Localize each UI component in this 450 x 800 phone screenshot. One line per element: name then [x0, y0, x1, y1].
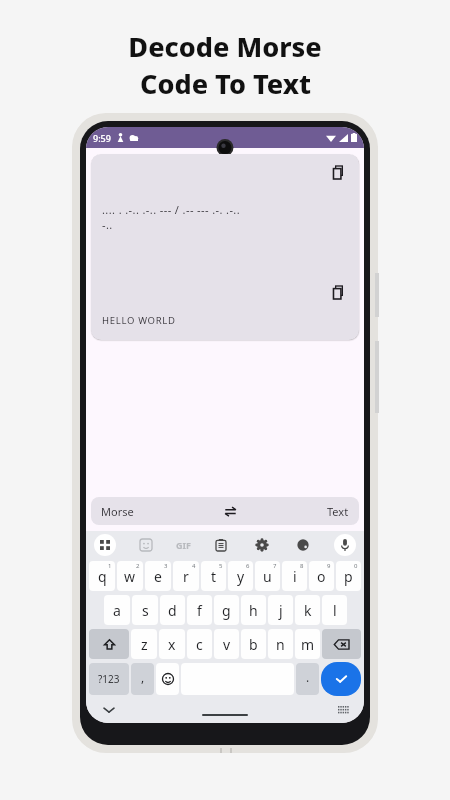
button[interactable]: x: [159, 629, 185, 659]
staticText: Text: [327, 504, 349, 519]
button[interactable]: h: [241, 595, 266, 625]
button[interactable]: q: [89, 561, 115, 591]
button[interactable]: i: [282, 561, 307, 591]
button[interactable]: Morse: [91, 497, 359, 525]
staticText: k: [304, 601, 312, 620]
staticText: HELLO WORLD: [102, 314, 176, 327]
button[interactable]: Hide keyboard: [100, 701, 118, 719]
staticText: w: [124, 567, 136, 586]
staticText: Morse: [101, 504, 134, 519]
button[interactable]: ,: [131, 663, 154, 695]
staticText: -..: [102, 217, 113, 232]
staticText: 9:59: [93, 132, 111, 144]
staticText: x: [168, 635, 176, 654]
button[interactable]: o: [309, 561, 334, 591]
button[interactable]: t: [201, 561, 226, 591]
staticText: f: [197, 601, 202, 620]
staticText: s: [142, 601, 149, 620]
staticText: l: [333, 601, 337, 620]
staticText: .: [306, 669, 310, 685]
staticText: v: [223, 635, 231, 654]
staticText: ,: [141, 669, 145, 685]
staticText: u: [263, 567, 272, 586]
button[interactable]: f: [187, 595, 212, 625]
button[interactable]: Copy decoded text: [329, 282, 349, 302]
staticText: n: [276, 635, 285, 654]
staticText: q: [98, 567, 107, 586]
staticText: e: [154, 567, 162, 586]
button[interactable]: r: [173, 561, 199, 591]
staticText: g: [222, 601, 231, 620]
button[interactable]: Shift: [89, 629, 129, 659]
button[interactable]: Emoji: [156, 663, 179, 695]
button[interactable]: Backspace: [322, 629, 361, 659]
button[interactable]: b: [241, 629, 266, 659]
staticText: 5: [219, 562, 223, 570]
staticText: o: [317, 567, 326, 586]
button[interactable]: Keyboard menu: [94, 534, 116, 556]
button[interactable]: m: [295, 629, 320, 659]
button[interactable]: d: [160, 595, 185, 625]
staticText: 6: [246, 562, 250, 570]
staticText: y: [237, 567, 245, 586]
staticText: z: [141, 635, 148, 654]
staticText: Code To Text: [140, 65, 311, 102]
button[interactable]: Change keyboard: [334, 701, 352, 719]
button[interactable]: s: [132, 595, 158, 625]
button[interactable]: Copy morse code: [329, 162, 349, 182]
button[interactable]: a: [104, 595, 130, 625]
staticText: a: [113, 601, 121, 620]
button[interactable]: y: [228, 561, 253, 591]
staticText: t: [211, 567, 217, 586]
staticText: r: [183, 567, 189, 586]
staticText: d: [168, 601, 177, 620]
button[interactable]: Stickers: [136, 535, 156, 555]
button[interactable]: GIF: [176, 539, 191, 551]
staticText: 9: [327, 562, 331, 570]
staticText: 8: [300, 562, 304, 570]
staticText: Decode Morse: [128, 28, 322, 65]
button[interactable]: ?123: [89, 663, 129, 695]
staticText: 4: [192, 562, 196, 570]
button[interactable]: l: [322, 595, 347, 625]
button[interactable]: k: [295, 595, 320, 625]
staticText: .... . .-.. .-.. --- / .-- --- .-. .-..: [102, 202, 241, 217]
button[interactable]: Settings: [252, 535, 272, 555]
staticText: c: [196, 635, 203, 654]
staticText: i: [293, 567, 297, 586]
staticText: 7: [273, 562, 277, 570]
staticText: m: [301, 635, 315, 654]
button[interactable]: w: [117, 561, 143, 591]
staticText: j: [279, 601, 283, 620]
button[interactable]: e: [145, 561, 171, 591]
button[interactable]: .: [296, 663, 319, 695]
button[interactable]: g: [214, 595, 239, 625]
staticText: b: [249, 635, 258, 654]
button[interactable]: v: [214, 629, 239, 659]
button[interactable]: p: [336, 561, 361, 591]
staticText: 2: [136, 562, 140, 570]
staticText: p: [344, 567, 353, 586]
button[interactable]: Clipboard: [211, 535, 231, 555]
button[interactable]: j: [268, 595, 293, 625]
staticText: 3: [164, 562, 168, 570]
button[interactable]: Voice input: [334, 534, 356, 556]
staticText: 1: [108, 562, 112, 570]
button[interactable]: Themes: [293, 535, 313, 555]
staticText: 0: [354, 562, 358, 570]
button[interactable]: Enter: [321, 662, 361, 696]
staticText: ?123: [98, 672, 120, 686]
button[interactable]: u: [255, 561, 280, 591]
button[interactable]: n: [268, 629, 293, 659]
button[interactable]: c: [187, 629, 212, 659]
staticText: h: [249, 601, 258, 620]
button[interactable]: z: [131, 629, 157, 659]
staticText: GIF: [176, 539, 191, 551]
